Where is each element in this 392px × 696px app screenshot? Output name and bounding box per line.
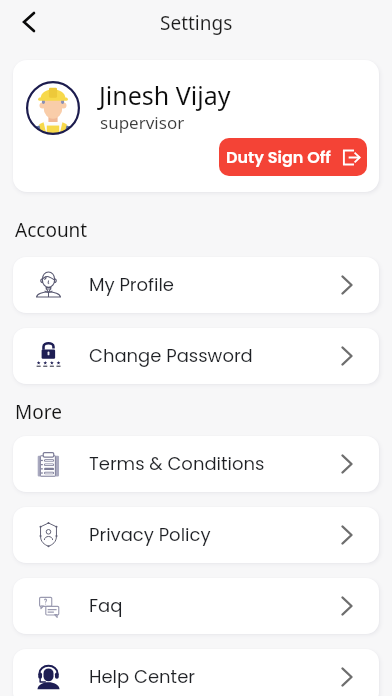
staticText: Help Center [89, 664, 321, 689]
button[interactable]: Change Password [13, 328, 379, 384]
button[interactable]: Duty Sign Off [219, 138, 367, 176]
staticText: Change Password [89, 343, 321, 368]
button[interactable]: Privacy Policy [13, 507, 379, 563]
staticText: Settings [160, 10, 233, 36]
staticText: Duty Sign Off [226, 146, 331, 168]
button[interactable]: Back [10, 3, 48, 41]
staticText: Privacy Policy [89, 522, 321, 547]
staticText: My Profile [89, 272, 321, 297]
button[interactable]: My Profile [13, 257, 379, 313]
staticText: More [15, 399, 62, 425]
staticText: Faq [89, 593, 321, 618]
staticText: Account [15, 217, 88, 243]
staticText: Jinesh Vijay [99, 78, 231, 112]
button[interactable]: Help Center [13, 649, 379, 696]
staticText: supervisor [100, 111, 185, 134]
button[interactable]: Terms & Conditions [13, 436, 379, 492]
staticText: Terms & Conditions [89, 451, 321, 476]
button[interactable]: Faq [13, 578, 379, 634]
